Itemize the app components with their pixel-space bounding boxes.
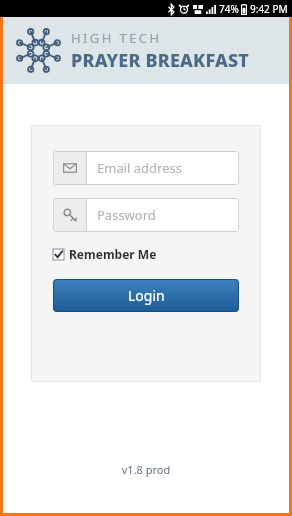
staticText: Password bbox=[97, 206, 156, 224]
staticText: HIGH TECH bbox=[71, 29, 162, 47]
button[interactable]: Login bbox=[53, 279, 239, 312]
button[interactable]: Remember Me bbox=[53, 245, 157, 263]
staticText: v1.8 prod bbox=[3, 462, 289, 477]
staticText: Remember Me bbox=[69, 246, 157, 262]
button[interactable]: Password bbox=[53, 198, 239, 232]
staticText: PRAYER BREAKFAST bbox=[71, 48, 250, 73]
staticText: Email address bbox=[97, 159, 182, 177]
staticText: Login bbox=[128, 286, 165, 305]
staticText: 74% bbox=[219, 2, 239, 16]
staticText: 9:42 PM bbox=[250, 2, 288, 16]
button[interactable]: Email address bbox=[53, 151, 239, 185]
